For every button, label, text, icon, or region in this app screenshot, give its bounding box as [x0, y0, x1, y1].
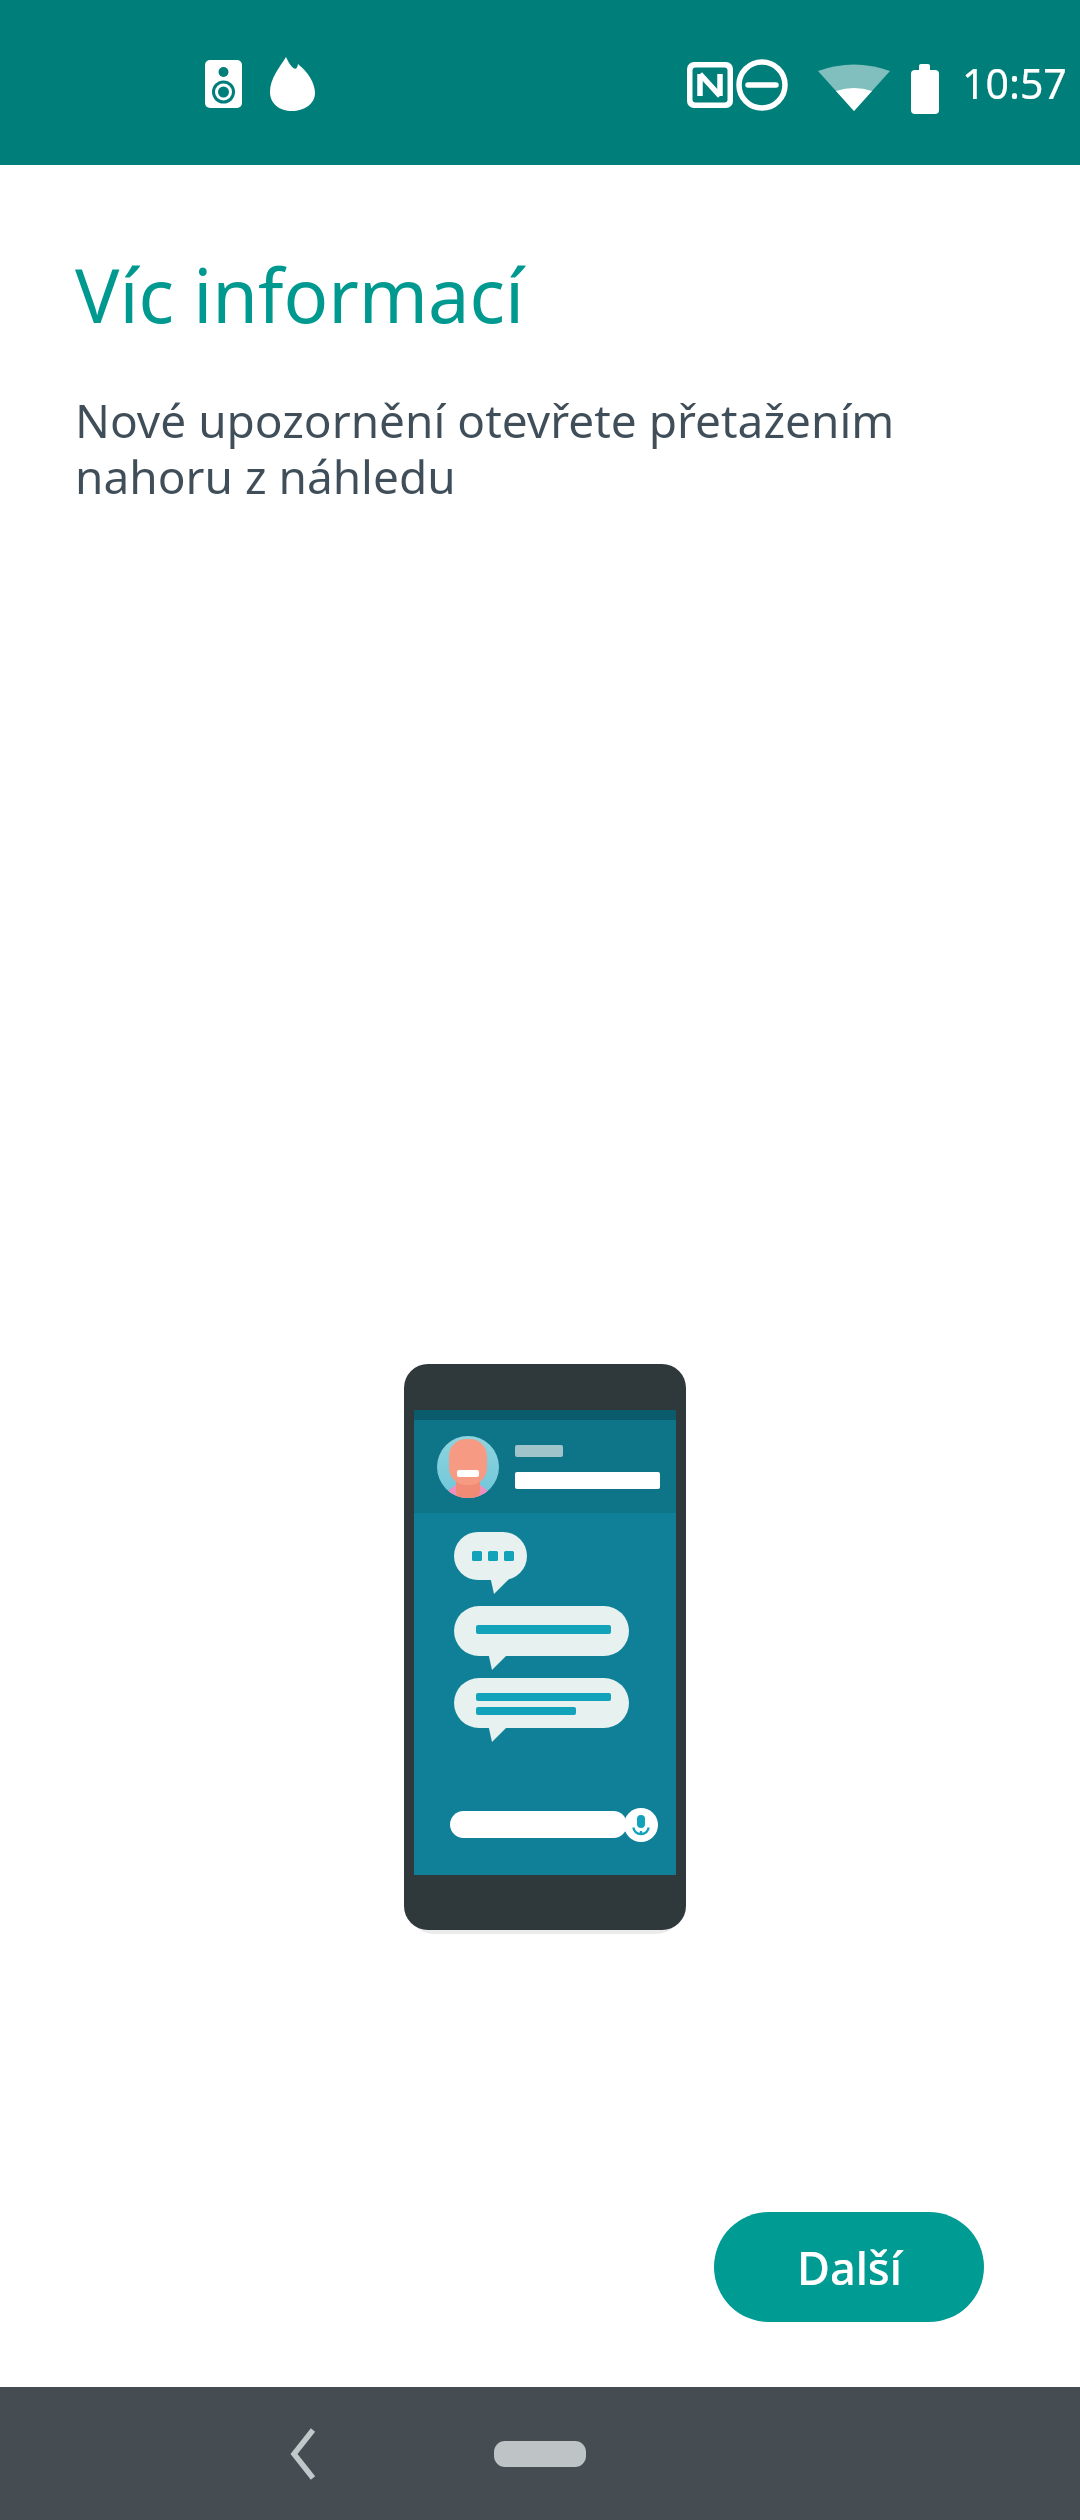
button[interactable]: Další [714, 2212, 984, 2322]
button[interactable]: Home [494, 2434, 586, 2474]
staticText: 10:57 [962, 55, 1067, 111]
staticText: Nové upozornění otevřete přetažením naho… [75, 389, 895, 507]
staticText: Víc informací [75, 244, 525, 345]
button[interactable]: Back [239, 2390, 367, 2518]
staticText: Další [797, 2237, 902, 2298]
